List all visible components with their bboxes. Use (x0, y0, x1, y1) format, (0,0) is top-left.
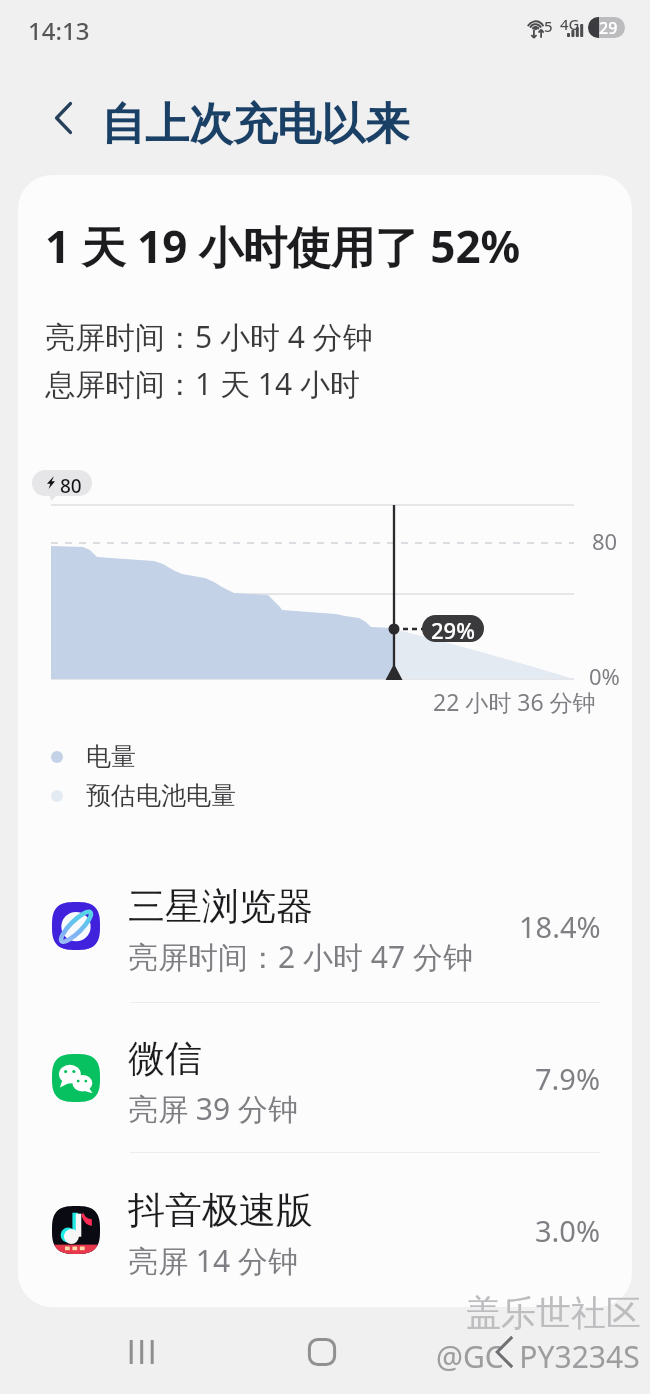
staticText: 18.4% (519, 907, 601, 946)
staticText: 5 (544, 16, 553, 36)
staticText: 22 小时 36 分钟 (433, 686, 596, 717)
staticText: 29 (599, 17, 618, 38)
staticText: 80 (592, 526, 618, 556)
staticText: @GC PY3234S (436, 1336, 640, 1377)
staticText: 14:13 (28, 14, 90, 47)
button[interactable]: 抖音极速版 (18, 1155, 632, 1305)
staticText: 3.0% (535, 1211, 601, 1250)
staticText: 自上次充电以来 (101, 97, 409, 152)
staticText: 1 天 19 小时使用了 52% (45, 216, 521, 276)
button[interactable]: Back (462, 1322, 548, 1382)
staticText: 80 (60, 473, 82, 496)
button[interactable]: Home (279, 1322, 365, 1382)
staticText: 电量 (86, 741, 136, 772)
staticText: 预估电池电量 (86, 780, 236, 811)
button[interactable]: Back (35, 90, 91, 146)
button[interactable]: Recents (100, 1322, 186, 1382)
staticText: 29% (431, 615, 475, 642)
staticText: 微信 (128, 1035, 202, 1082)
staticText: 7.9% (535, 1059, 601, 1098)
staticText: 亮屏时间：2 小时 47 分钟 (128, 936, 473, 977)
staticText: 亮屏 14 分钟 (128, 1240, 298, 1281)
staticText: 4G (560, 14, 580, 34)
button[interactable]: 三星浏览器 (18, 851, 632, 1001)
button[interactable]: 微信 (18, 1003, 632, 1153)
staticText: 抖音极速版 (128, 1187, 313, 1234)
staticText: 息屏时间：1 天 14 小时 (45, 363, 360, 404)
staticText: 亮屏 39 分钟 (128, 1088, 298, 1129)
staticText: 亮屏时间：5 小时 4 分钟 (45, 316, 373, 357)
staticText: 三星浏览器 (128, 883, 313, 930)
staticText: 0% (589, 661, 620, 691)
staticText: 盖乐世社区 (466, 1291, 641, 1335)
